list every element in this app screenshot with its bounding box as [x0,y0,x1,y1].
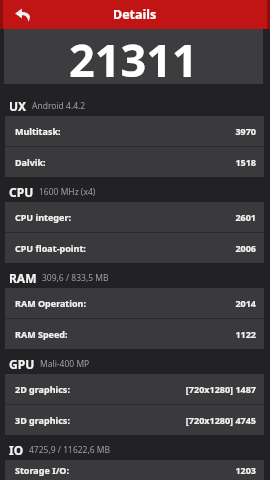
button[interactable]: RAM Operation: [5,288,264,318]
staticText: Storage I/O: [15,464,70,476]
staticText: 309,6 / 833,5 MB [42,272,109,284]
button[interactable]: RAM Speed: [5,319,264,349]
button[interactable]: CPU float-point: [5,233,264,263]
button[interactable]: Multitask: [5,116,264,146]
staticText: Android 4.4.2 [32,100,86,112]
staticText: 3970 [235,125,256,137]
staticText: 2601 [235,211,256,223]
staticText: Dalvik: [15,156,46,168]
staticText: CPU integer: [15,211,71,223]
staticText: Details [113,6,157,23]
staticText: CPU [9,184,34,200]
staticText: [720x1280] 4745 [185,414,256,426]
staticText: RAM Speed: [15,328,68,340]
button[interactable]: Dalvik: [5,147,264,177]
button[interactable]: Storage I/O: [5,460,264,480]
staticText: Mali-400 MP [40,358,90,370]
staticText: [720x1280] 1487 [185,383,256,395]
button[interactable]: Back [8,0,38,29]
staticText: CPU float-point: [15,242,86,254]
staticText: GPU [9,356,35,372]
staticText: 2006 [235,242,256,254]
button[interactable]: 2D graphics: [5,374,264,404]
staticText: 1122 [235,328,256,340]
staticText: 1600 MHz (x4) [39,186,96,198]
button[interactable]: 3D graphics: [5,405,264,435]
staticText: 2D graphics: [15,383,70,395]
staticText: UX [9,98,27,114]
staticText: 21311 [69,29,198,84]
staticText: 3D graphics: [15,414,70,426]
staticText: IO [9,442,24,458]
staticText: Multitask: [15,125,61,137]
staticText: 1518 [235,156,256,168]
staticText: 2014 [235,297,256,309]
staticText: RAM Operation: [15,297,86,309]
staticText: 1203 [235,464,256,476]
button[interactable]: CPU integer: [5,202,264,232]
staticText: 4725,9 / 11622,6 MB [29,444,111,456]
staticText: RAM [9,270,37,286]
button[interactable]: 21311 [4,29,263,84]
